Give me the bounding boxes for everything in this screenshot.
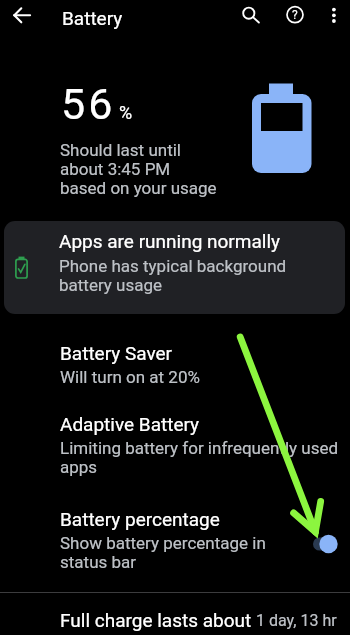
button[interactable]: Battery percentage bbox=[0, 504, 350, 576]
staticText: % bbox=[119, 102, 133, 123]
staticText: Limiting battery for infrequently used a… bbox=[60, 438, 339, 477]
staticText: ? bbox=[292, 8, 298, 22]
staticText: Adaptive Battery bbox=[60, 413, 200, 435]
staticText: Battery percentage bbox=[60, 508, 220, 530]
staticText: 1 day, 13 hr bbox=[256, 611, 337, 630]
staticText: Show battery percentage in status bar bbox=[60, 533, 266, 572]
staticText: Battery bbox=[62, 7, 123, 29]
button[interactable]: Battery percentage toggle bbox=[296, 529, 349, 559]
button[interactable]: Search bbox=[229, 0, 269, 32]
staticText: Battery Saver bbox=[60, 342, 173, 364]
staticText: Full charge lasts about bbox=[60, 609, 256, 631]
button[interactable]: Back bbox=[2, 0, 42, 32]
button[interactable]: Help bbox=[275, 0, 315, 32]
staticText: Should last until about 3:45 PM based on… bbox=[60, 140, 217, 198]
staticText: Will turn on at 20% bbox=[60, 367, 200, 387]
button[interactable]: More options bbox=[314, 0, 350, 32]
staticText: Apps are running normally bbox=[59, 230, 281, 252]
button[interactable]: Battery Saver bbox=[0, 338, 350, 391]
button[interactable]: Adaptive Battery bbox=[0, 409, 350, 481]
button[interactable]: Apps are running normally bbox=[4, 221, 345, 314]
staticText: Phone has typical background battery usa… bbox=[59, 256, 287, 295]
staticText: 56 bbox=[61, 79, 116, 129]
